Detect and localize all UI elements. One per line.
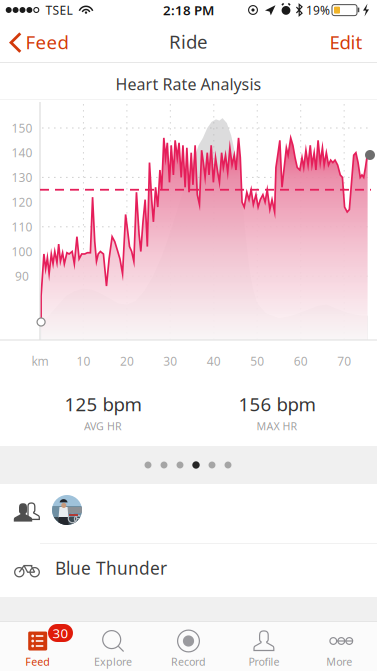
staticText: 120 xyxy=(11,194,32,210)
staticText: 20 xyxy=(120,353,134,369)
staticText: More xyxy=(326,654,352,669)
staticText: 60 xyxy=(294,353,308,369)
button[interactable]: Explore xyxy=(75,621,151,671)
staticText: 70 xyxy=(337,353,351,369)
staticText: 30 xyxy=(163,353,177,369)
staticText: 156 bpm xyxy=(238,392,315,416)
staticText: 30 xyxy=(52,624,68,642)
staticText: Feed xyxy=(26,30,69,54)
staticText: 100 xyxy=(11,243,32,259)
staticText: AVG HR xyxy=(84,419,122,433)
staticText: Record xyxy=(171,654,206,669)
staticText: Heart Rate Analysis xyxy=(115,73,261,95)
staticText: Ride xyxy=(169,29,208,54)
staticText: 10 xyxy=(76,353,90,369)
staticText: 150 xyxy=(11,120,32,136)
staticText: 125 bpm xyxy=(64,392,141,416)
staticText: 140 xyxy=(11,145,32,161)
staticText: km xyxy=(31,353,48,369)
staticText: TSEL xyxy=(45,2,72,18)
staticText: 110 xyxy=(11,219,32,235)
button[interactable]: Record xyxy=(151,621,226,671)
staticText: Profile xyxy=(248,654,279,669)
staticText: 19% xyxy=(306,2,330,18)
staticText: Edit xyxy=(329,30,362,54)
staticText: Blue Thunder xyxy=(55,556,167,579)
button[interactable]: Edit xyxy=(0,0,62,40)
button[interactable]: More xyxy=(302,621,377,671)
staticText: 2:18 PM xyxy=(163,1,214,19)
staticText: MAX HR xyxy=(256,419,297,433)
button[interactable]: Profile xyxy=(226,621,302,671)
staticText: 90 xyxy=(15,268,29,284)
button[interactable]: Feed xyxy=(0,621,75,671)
staticText: Feed xyxy=(25,654,50,669)
button[interactable]: Feed xyxy=(10,22,86,62)
staticText: Explore xyxy=(94,654,132,669)
staticText: 40 xyxy=(207,353,221,369)
staticText: 130 xyxy=(11,169,32,185)
staticText: 50 xyxy=(250,353,264,369)
